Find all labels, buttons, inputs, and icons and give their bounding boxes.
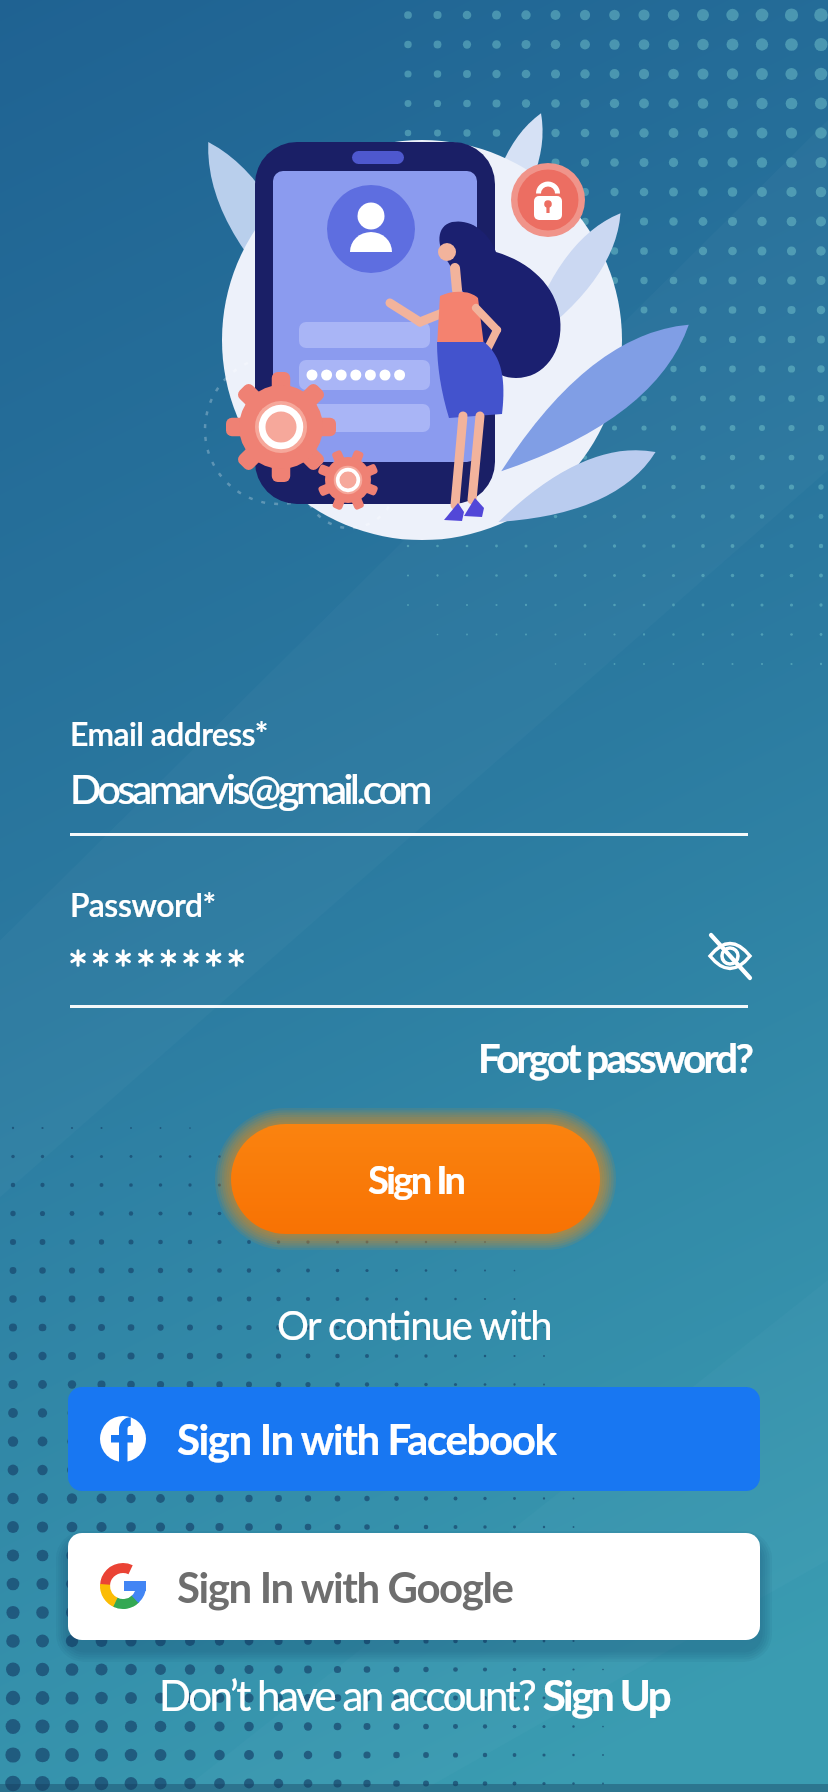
button[interactable]: Password* [70,885,748,1008]
button[interactable]: Sign In [231,1124,600,1234]
staticText: Email address* [70,714,268,752]
button[interactable]: Sign In with Facebook [68,1387,760,1491]
staticText: Or continue with [277,1301,552,1349]
staticText: Sign In with Facebook [177,1414,556,1464]
staticText: Sign In [368,1156,464,1202]
staticText: Dosamarvis@gmail.com [70,764,430,813]
button[interactable]: Don’t have an account? Sign Up [159,1670,670,1720]
staticText: Forgot password? [478,1034,752,1082]
button[interactable]: Sign In with Google [68,1533,760,1640]
staticText: Don’t have an account? Sign Up [159,1670,670,1720]
staticText: Sign In with Google [177,1562,513,1612]
button[interactable]: Forgot password? [478,1034,752,1082]
button[interactable]: Email address* [70,714,748,839]
staticText: Password* [70,885,216,923]
